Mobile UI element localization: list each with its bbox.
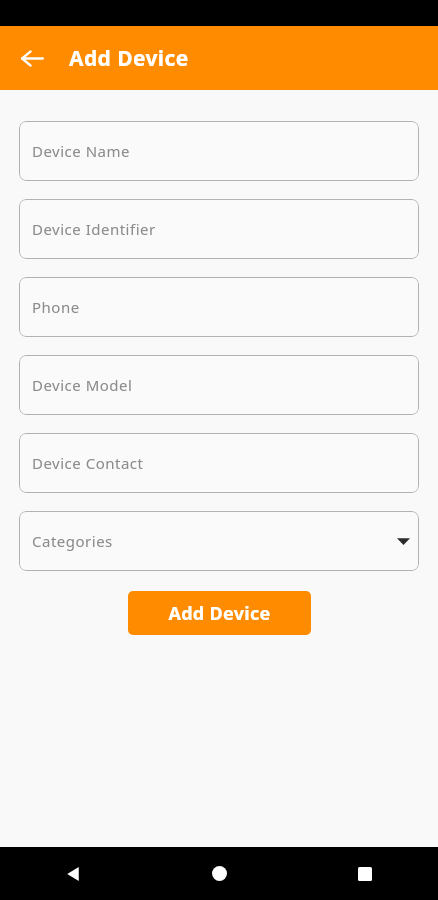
button[interactable]: Device Model bbox=[19, 355, 419, 415]
button[interactable]: Device Identifier bbox=[19, 199, 419, 259]
staticText: Add Device bbox=[69, 44, 189, 73]
staticText: Device Identifier bbox=[32, 219, 156, 239]
button[interactable]: Recent apps bbox=[292, 847, 438, 900]
button[interactable]: Add Device bbox=[128, 591, 311, 635]
button[interactable]: Back bbox=[0, 847, 146, 900]
staticText: Device Name bbox=[32, 141, 130, 161]
staticText: Phone bbox=[32, 297, 80, 317]
button[interactable]: Home bbox=[146, 847, 292, 900]
staticText: Add Device bbox=[168, 601, 271, 626]
button[interactable]: Back bbox=[8, 34, 56, 82]
button[interactable]: Device Contact bbox=[19, 433, 419, 493]
staticText: Categories bbox=[32, 531, 113, 551]
button[interactable]: Device Name bbox=[19, 121, 419, 181]
button[interactable]: Phone bbox=[19, 277, 419, 337]
button[interactable]: Categories bbox=[19, 511, 419, 571]
staticText: Device Model bbox=[32, 375, 133, 395]
staticText: Device Contact bbox=[32, 453, 144, 473]
